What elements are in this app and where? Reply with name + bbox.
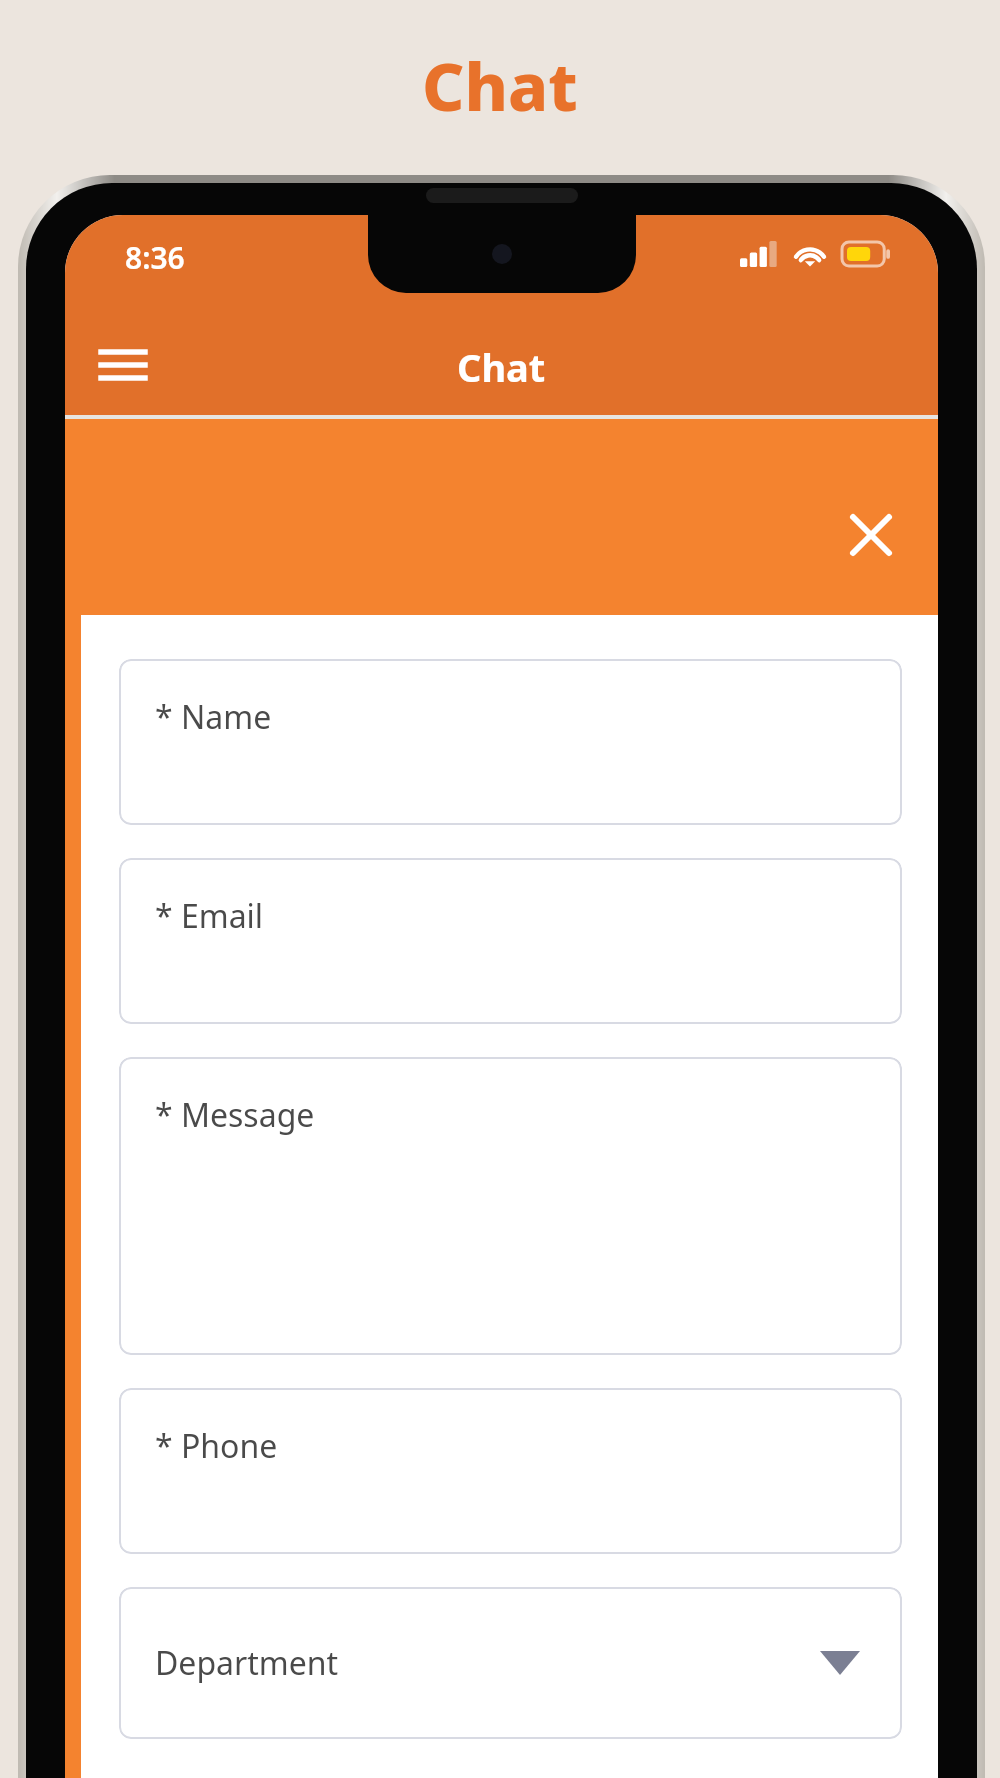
staticText: Department (155, 1641, 339, 1685)
staticText: * Email (155, 894, 264, 938)
button[interactable]: * Message (119, 1057, 902, 1355)
button[interactable]: Department (119, 1587, 902, 1739)
button[interactable]: Open navigation menu (91, 333, 155, 397)
staticText: 8:36 (125, 237, 185, 278)
staticText: Chat (457, 341, 546, 393)
staticText: Chat (422, 40, 578, 130)
button[interactable]: * Email (119, 858, 902, 1024)
staticText: * Message (155, 1093, 315, 1137)
button[interactable]: * Phone (119, 1388, 902, 1554)
button[interactable]: Close (840, 504, 902, 566)
staticText: * Name (155, 695, 272, 739)
staticText: * Phone (155, 1424, 278, 1468)
button[interactable]: * Name (119, 659, 902, 825)
